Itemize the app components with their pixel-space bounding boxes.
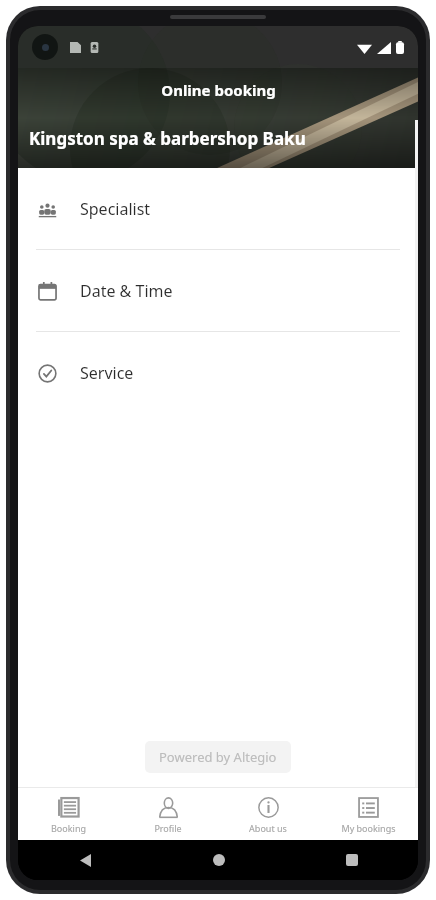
button[interactable]: Specialist	[18, 168, 418, 249]
staticText: Date & Time	[80, 280, 173, 302]
button[interactable]: About us	[218, 788, 318, 840]
button[interactable]: My bookings	[318, 788, 418, 840]
button[interactable]: Booking	[18, 788, 118, 840]
button[interactable]: Home	[204, 845, 234, 875]
button[interactable]: Powered by Altegio	[145, 741, 291, 773]
staticText: Profile	[154, 822, 182, 834]
staticText: Powered by Altegio	[159, 748, 277, 766]
button[interactable]: Date & Time	[18, 250, 418, 331]
staticText: My bookings	[341, 822, 396, 834]
button[interactable]: Back	[70, 845, 100, 875]
button[interactable]: Recent apps	[337, 845, 367, 875]
staticText: About us	[249, 822, 287, 834]
staticText: Booking	[51, 822, 86, 834]
staticText: Online booking	[161, 80, 276, 100]
button[interactable]: Service	[18, 332, 418, 413]
staticText: Kingston spa & barbershop Baku	[29, 127, 306, 150]
staticText: Specialist	[80, 198, 151, 220]
button[interactable]: Profile	[118, 788, 218, 840]
staticText: Service	[80, 362, 134, 384]
